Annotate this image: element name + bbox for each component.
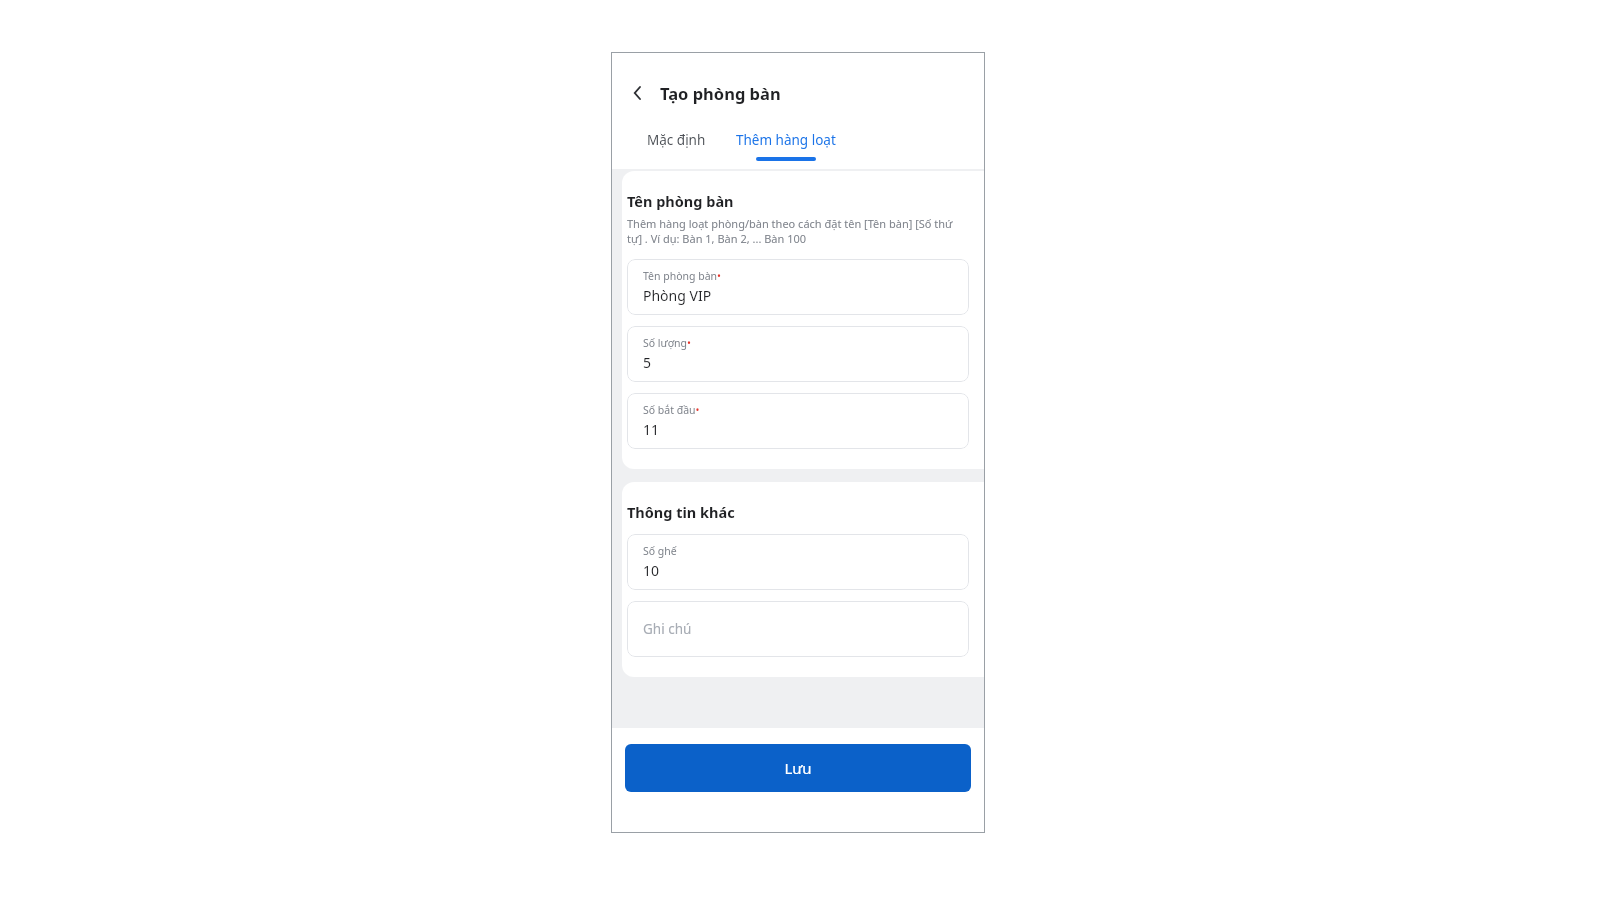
button[interactable]: Back (623, 78, 653, 108)
button[interactable]: Thêm hàng loạt (725, 120, 847, 169)
staticText: Tên phòng bàn• (643, 269, 722, 283)
staticText: Lưu (784, 758, 812, 778)
button[interactable]: Tên phòng bàn• (627, 259, 969, 315)
staticText: Thêm hàng loạt (736, 131, 836, 149)
button[interactable]: Ghi chú (627, 601, 969, 657)
button[interactable]: Số bắt đầu• (627, 393, 969, 449)
staticText: Số bắt đầu• (643, 403, 700, 417)
staticText: Phòng VIP (643, 286, 712, 305)
staticText: Tên phòng bàn (627, 191, 734, 211)
staticText: Số ghế (643, 544, 677, 558)
staticText: Ghi chú (643, 620, 692, 638)
staticText: 5 (643, 353, 652, 372)
button[interactable]: Số lượng• (627, 326, 969, 382)
staticText: Số lượng• (643, 336, 691, 350)
staticText: Tạo phòng bàn (660, 82, 781, 104)
staticText: 10 (643, 561, 660, 580)
button[interactable]: Lưu (625, 744, 971, 792)
staticText: 11 (643, 420, 660, 439)
button[interactable]: Mặc định (627, 120, 725, 169)
staticText: Mặc định (647, 131, 706, 149)
staticText: Thông tin khác (627, 502, 735, 522)
staticText: Thêm hàng loạt phòng/bàn theo cách đặt t… (627, 216, 969, 246)
button[interactable]: Số ghế (627, 534, 969, 590)
